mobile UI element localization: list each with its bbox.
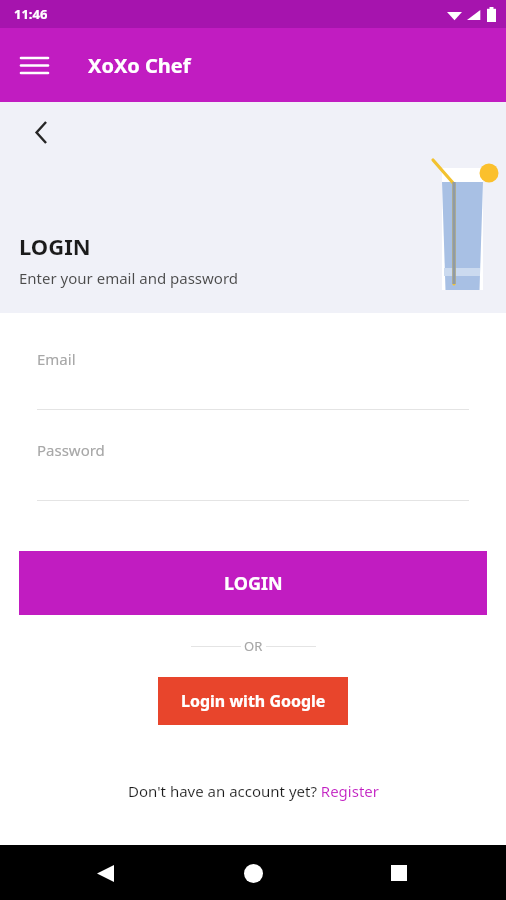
button[interactable]: Back [18,109,64,155]
button[interactable]: Don't have an account yet? Register [0,781,506,801]
staticText: OR [244,637,263,655]
staticText: LOGIN [19,231,91,261]
button[interactable]: Recent apps [376,850,422,896]
button[interactable]: Open navigation menu [12,43,56,87]
staticText: Login with Google [181,690,326,712]
staticText: Email [37,349,76,369]
button[interactable]: LOGIN [19,551,487,615]
staticText: 11:46 [14,5,48,23]
staticText: Password [37,440,105,460]
staticText: LOGIN [224,571,283,596]
button[interactable]: Home [230,850,276,896]
button[interactable]: Email [37,349,469,410]
button[interactable]: Password [37,440,469,501]
staticText: XoXo Chef [88,52,191,79]
staticText: Enter your email and password [19,268,239,288]
button[interactable]: Back [82,850,128,896]
button[interactable]: Login with Google [158,677,348,725]
staticText: Don't have an account yet? Register [128,781,379,801]
